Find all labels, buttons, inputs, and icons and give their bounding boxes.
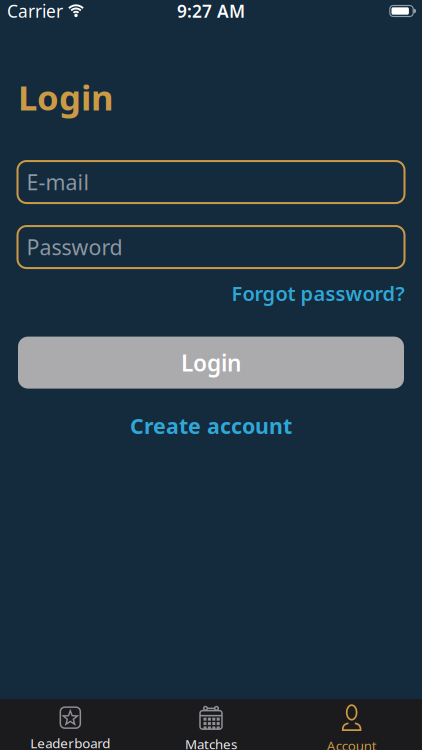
button[interactable]: Leaderboard <box>0 697 141 750</box>
staticText: E-mail <box>26 168 89 196</box>
staticText: Matches <box>185 735 237 750</box>
button[interactable]: Account <box>281 695 422 750</box>
button[interactable]: Matches <box>141 696 281 750</box>
staticText: Password <box>26 233 122 261</box>
button[interactable]: Login <box>18 337 404 389</box>
button[interactable]: E-mail <box>17 161 404 203</box>
staticText: Create account <box>130 412 292 440</box>
staticText: Login <box>18 74 114 120</box>
staticText: Account <box>327 737 377 750</box>
staticText: Forgot password? <box>231 280 404 307</box>
button[interactable]: Password <box>17 226 404 268</box>
staticText: Carrier <box>7 0 63 22</box>
button[interactable]: Create account <box>130 412 292 440</box>
button[interactable]: Forgot password? <box>231 280 404 307</box>
staticText: Leaderboard <box>30 734 110 750</box>
staticText: Login <box>181 347 241 378</box>
staticText: 9:27 AM <box>177 0 245 22</box>
